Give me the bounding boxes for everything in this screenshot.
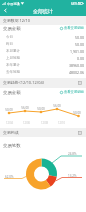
staticText: 昨日	[6, 42, 13, 46]
staticText: 交易趋势 (12/10-12/04)	[3, 80, 44, 85]
button[interactable]: 去年同期	[0, 69, 86, 76]
button[interactable]: 查看交易明细	[60, 90, 84, 94]
staticText: 本月累计	[6, 49, 20, 53]
staticText: 13.2%	[68, 174, 77, 178]
staticText: 交易金额	[3, 90, 21, 96]
staticText: 56.00	[51, 104, 63, 108]
staticText: 12/06	[21, 121, 32, 125]
staticText: 今日	[6, 35, 13, 39]
staticText: 1,901.00	[70, 49, 84, 54]
staticText: 50.00	[3, 108, 15, 112]
staticText: 12/08	[39, 121, 50, 125]
staticText: 上月同期	[6, 56, 20, 60]
staticText: 48002.06	[69, 70, 84, 75]
staticText: 56.00	[19, 106, 31, 110]
staticText: 中国移动	[7, 2, 20, 6]
staticText: 68%	[71, 2, 78, 6]
staticText: 交易数据 12/10	[3, 18, 30, 23]
staticText: 62.0%	[5, 175, 14, 179]
staticText: 50.00	[35, 107, 47, 111]
staticText: 查看交易明细	[64, 90, 84, 94]
staticText: 0.00	[77, 56, 84, 61]
button[interactable]: 本月累计	[0, 48, 86, 55]
button[interactable]: 上月同期	[0, 55, 86, 62]
staticText: 12/10	[56, 121, 67, 125]
button[interactable]: 查看交易明细	[60, 26, 84, 30]
staticText: 50.00	[75, 42, 84, 47]
staticText: 交易笔数	[3, 143, 21, 149]
staticText: 全部统计	[33, 8, 53, 14]
staticText: 50.00	[75, 35, 84, 40]
staticText: 本年累计	[6, 63, 20, 67]
staticText: 12/04	[4, 121, 15, 125]
staticText: 交易金额	[3, 26, 21, 32]
staticText: 交易构成	[3, 130, 19, 135]
staticText: 38960.00	[69, 63, 84, 68]
button[interactable]: Fullscreen chart	[78, 81, 82, 85]
button[interactable]: Back	[1, 6, 10, 15]
staticText: 24.8%	[68, 152, 77, 156]
button[interactable]: 今日	[0, 34, 86, 41]
button[interactable]: 本年累计	[0, 62, 86, 69]
button[interactable]: 昨日	[0, 41, 86, 48]
button[interactable]: Fullscreen chart	[78, 131, 82, 135]
staticText: 50.00	[71, 111, 83, 115]
staticText: 去年同期	[6, 70, 20, 74]
staticText: 查看交易明细	[64, 26, 84, 30]
